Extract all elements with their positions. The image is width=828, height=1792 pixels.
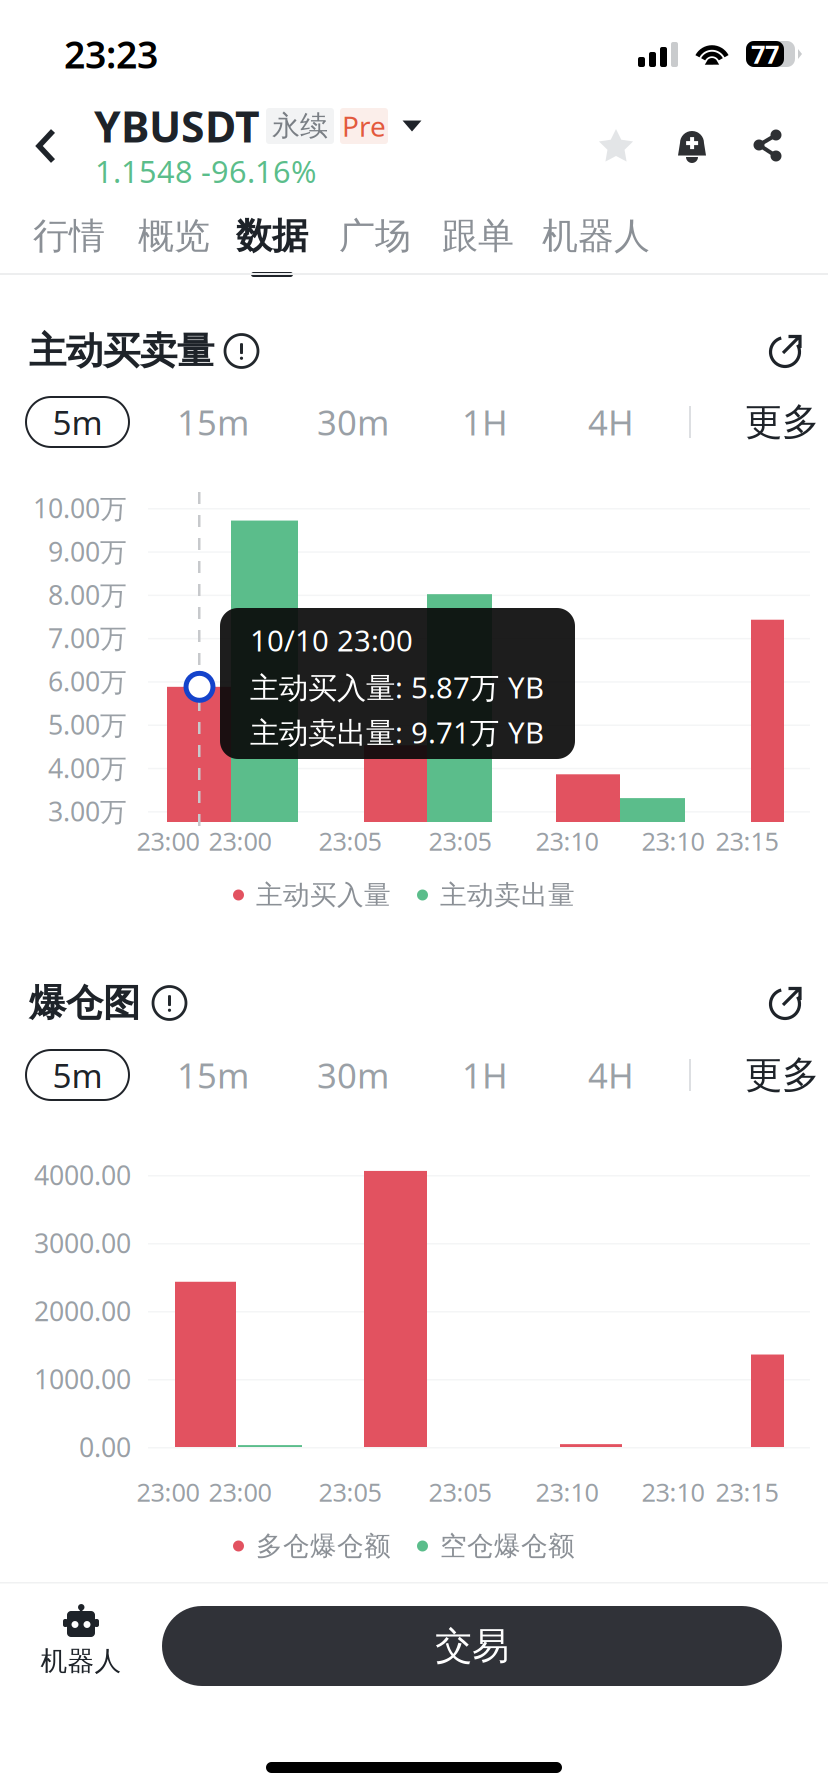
- staticText: 概览: [138, 214, 210, 258]
- staticText: 多仓爆仓额: [256, 1530, 391, 1562]
- staticText: 6.00万: [48, 663, 127, 699]
- staticText: 主动买入量: [256, 879, 391, 911]
- staticText: 23:10: [535, 1475, 598, 1509]
- staticText: 23:15: [715, 824, 778, 858]
- staticText: 77: [751, 37, 779, 71]
- staticText: 2000.00: [34, 1293, 131, 1329]
- staticText: 23:00: [208, 1475, 271, 1509]
- staticText: 15m: [177, 1052, 249, 1098]
- staticText: 5.00万: [48, 707, 127, 742]
- button[interactable]: Back: [8, 108, 84, 184]
- staticText: 10/10 23:00: [250, 620, 413, 659]
- staticText: 5m: [52, 1053, 102, 1097]
- staticText: 23:05: [318, 824, 381, 858]
- button[interactable]: 4H: [561, 1050, 661, 1100]
- staticText: 机器人: [40, 1645, 121, 1677]
- button[interactable]: 1H: [435, 1050, 535, 1100]
- button[interactable]: 4H: [561, 397, 661, 447]
- staticText: 交易: [435, 1623, 509, 1669]
- button[interactable]: 交易: [162, 1606, 782, 1686]
- staticText: 8.00万: [48, 577, 127, 612]
- staticText: 行情: [33, 214, 105, 258]
- staticText: 0.00: [79, 1429, 131, 1465]
- button[interactable]: 更多: [745, 1050, 828, 1100]
- staticText: 1H: [462, 399, 508, 445]
- staticText: 数据: [236, 214, 308, 258]
- staticText: 23:10: [641, 824, 704, 858]
- staticText: YBUSDT: [94, 98, 260, 154]
- button[interactable]: 15m: [153, 1050, 273, 1100]
- staticText: 23:05: [428, 1475, 491, 1509]
- staticText: 5m: [52, 400, 102, 444]
- staticText: 空仓爆仓额: [440, 1530, 575, 1562]
- staticText: 永续: [272, 109, 328, 143]
- staticText: 更多: [745, 1052, 819, 1098]
- staticText: 1H: [462, 1052, 508, 1098]
- staticText: 机器人: [542, 214, 650, 258]
- staticText: 23:10: [535, 824, 598, 858]
- staticText: 更多: [745, 399, 819, 445]
- staticText: 主动卖出量: [440, 879, 575, 911]
- staticText: 4000.00: [34, 1157, 131, 1193]
- button[interactable]: Favorite: [580, 111, 652, 183]
- staticText: Pre: [342, 107, 386, 145]
- button[interactable]: 概览: [0, 0, 234, 76]
- button[interactable]: 更多: [745, 397, 828, 447]
- staticText: 23:00: [136, 824, 199, 858]
- staticText: 23:05: [428, 824, 491, 858]
- staticText: 3.00万: [48, 793, 127, 829]
- staticText: 23:00: [136, 1475, 199, 1509]
- staticText: 1.1548 -96.16%: [95, 151, 316, 191]
- staticText: 3000.00: [34, 1225, 131, 1261]
- button[interactable]: 行情: [0, 0, 129, 76]
- staticText: 主动买卖量: [29, 328, 214, 374]
- button[interactable]: 15m: [153, 397, 273, 447]
- staticText: 23:15: [715, 1475, 778, 1509]
- button[interactable]: 30m: [293, 397, 413, 447]
- staticText: 9.00万: [48, 534, 127, 569]
- button[interactable]: 机器人: [0, 0, 656, 76]
- staticText: 4H: [588, 1052, 634, 1098]
- staticText: 跟单: [442, 214, 514, 258]
- button[interactable]: 广场: [0, 0, 435, 76]
- staticText: 1000.00: [34, 1361, 131, 1397]
- button[interactable]: 数据: [0, 0, 332, 76]
- button[interactable]: 30m: [293, 1050, 413, 1100]
- staticText: 主动买入量: 5.87万 YB: [250, 667, 544, 706]
- staticText: 4H: [588, 399, 634, 445]
- staticText: 23:10: [641, 1475, 704, 1509]
- staticText: 23:00: [208, 824, 271, 858]
- staticText: 23:05: [318, 1475, 381, 1509]
- staticText: 30m: [317, 1052, 389, 1098]
- button[interactable]: Price alert: [656, 110, 728, 182]
- button[interactable]: 跟单: [0, 0, 538, 76]
- button[interactable]: Share: [732, 110, 804, 182]
- button[interactable]: Expand chart: [756, 321, 816, 381]
- staticText: 30m: [317, 399, 389, 445]
- button[interactable]: 5m: [26, 397, 129, 447]
- staticText: 4.00万: [48, 750, 127, 785]
- staticText: 主动卖出量: 9.71万 YB: [250, 712, 544, 751]
- staticText: 10.00万: [33, 490, 127, 526]
- button[interactable]: 机器人: [19, 1598, 143, 1698]
- button[interactable]: 1H: [435, 397, 535, 447]
- staticText: 广场: [339, 214, 411, 258]
- staticText: 爆仓图: [29, 980, 140, 1026]
- button[interactable]: 5m: [26, 1050, 129, 1100]
- staticText: 7.00万: [48, 620, 127, 656]
- staticText: 23:23: [64, 29, 158, 79]
- staticText: 15m: [177, 399, 249, 445]
- button[interactable]: Expand chart: [756, 973, 816, 1033]
- button[interactable]: Switch contract: [390, 104, 434, 148]
